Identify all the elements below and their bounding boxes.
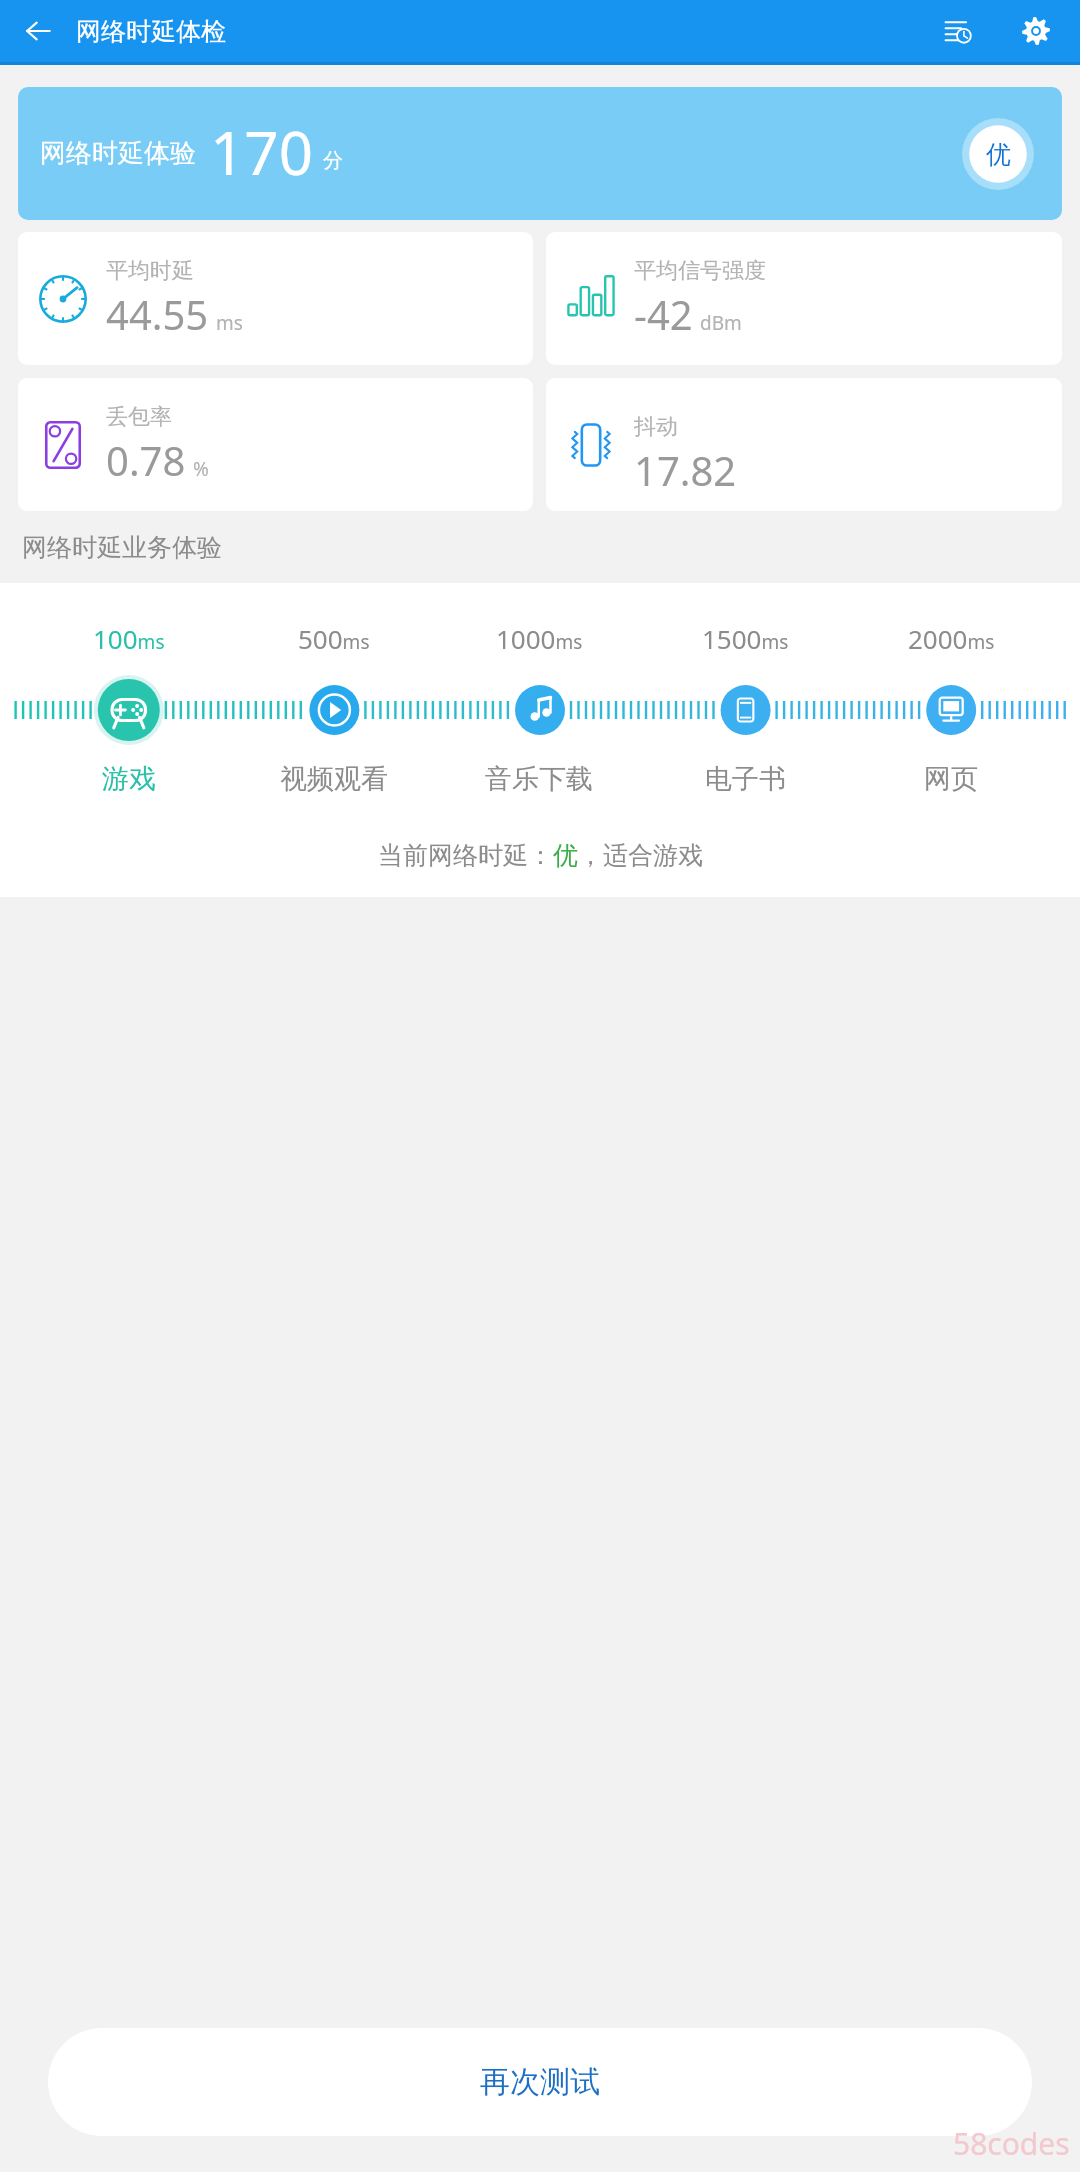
staticText: 网络时延体检 <box>76 16 226 47</box>
staticText: 1500ms <box>702 621 789 656</box>
button[interactable]: 游戏 <box>26 672 231 748</box>
staticText: 视频观看 <box>280 762 388 796</box>
staticText: ms <box>216 310 243 336</box>
button[interactable]: 视频观看 <box>231 672 436 748</box>
staticText: 100ms <box>93 621 165 656</box>
staticText: 500ms <box>298 621 370 656</box>
staticText: 58codes <box>953 2123 1070 2164</box>
button[interactable]: 电子书 <box>705 762 786 796</box>
staticText: 44.55 <box>106 287 209 341</box>
staticText: 当前网络时延：优，适合游戏 <box>378 840 703 871</box>
staticText: 0.78 <box>106 433 186 487</box>
staticText: -42 <box>634 287 693 341</box>
button[interactable]: Settings <box>1008 3 1064 59</box>
button[interactable]: 平均时延 <box>18 232 533 365</box>
button[interactable]: 抖动 <box>546 378 1062 511</box>
staticText: 网页 <box>924 762 978 796</box>
button[interactable]: 丢包率 <box>18 378 533 511</box>
staticText: 分 <box>323 148 343 173</box>
staticText: 平均信号强度 <box>634 257 766 285</box>
staticText: 平均时延 <box>106 257 194 285</box>
button[interactable]: Back <box>10 3 66 59</box>
button[interactable]: 网页 <box>924 762 978 796</box>
staticText: 丢包率 <box>106 403 172 431</box>
staticText: % <box>193 456 209 482</box>
staticText: 抖动 <box>634 413 678 441</box>
staticText: 1000ms <box>496 621 583 656</box>
staticText: 2000ms <box>908 621 995 656</box>
button[interactable]: 游戏 <box>102 762 156 796</box>
staticText: 再次测试 <box>480 2063 600 2101</box>
button[interactable]: 音乐下载 <box>485 762 593 796</box>
staticText: 网络时延业务体验 <box>22 532 222 563</box>
button[interactable]: 网络时延体验 <box>18 87 1062 220</box>
button[interactable]: History <box>930 3 986 59</box>
staticText: 网络时延体验 <box>40 137 196 170</box>
button[interactable]: 音乐下载 <box>436 672 642 748</box>
button[interactable]: 平均信号强度 <box>546 232 1062 365</box>
staticText: dBm <box>700 310 742 336</box>
staticText: 游戏 <box>102 762 156 796</box>
button[interactable]: 视频观看 <box>280 762 388 796</box>
button[interactable]: 电子书 <box>642 672 848 748</box>
staticText: 170 <box>210 111 313 193</box>
button[interactable]: 再次测试 <box>48 2028 1032 2136</box>
staticText: 音乐下载 <box>485 762 593 796</box>
staticText: 优 <box>986 139 1011 170</box>
button[interactable]: 网页 <box>848 672 1054 748</box>
staticText: 电子书 <box>705 762 786 796</box>
staticText: 17.82 <box>634 443 737 497</box>
